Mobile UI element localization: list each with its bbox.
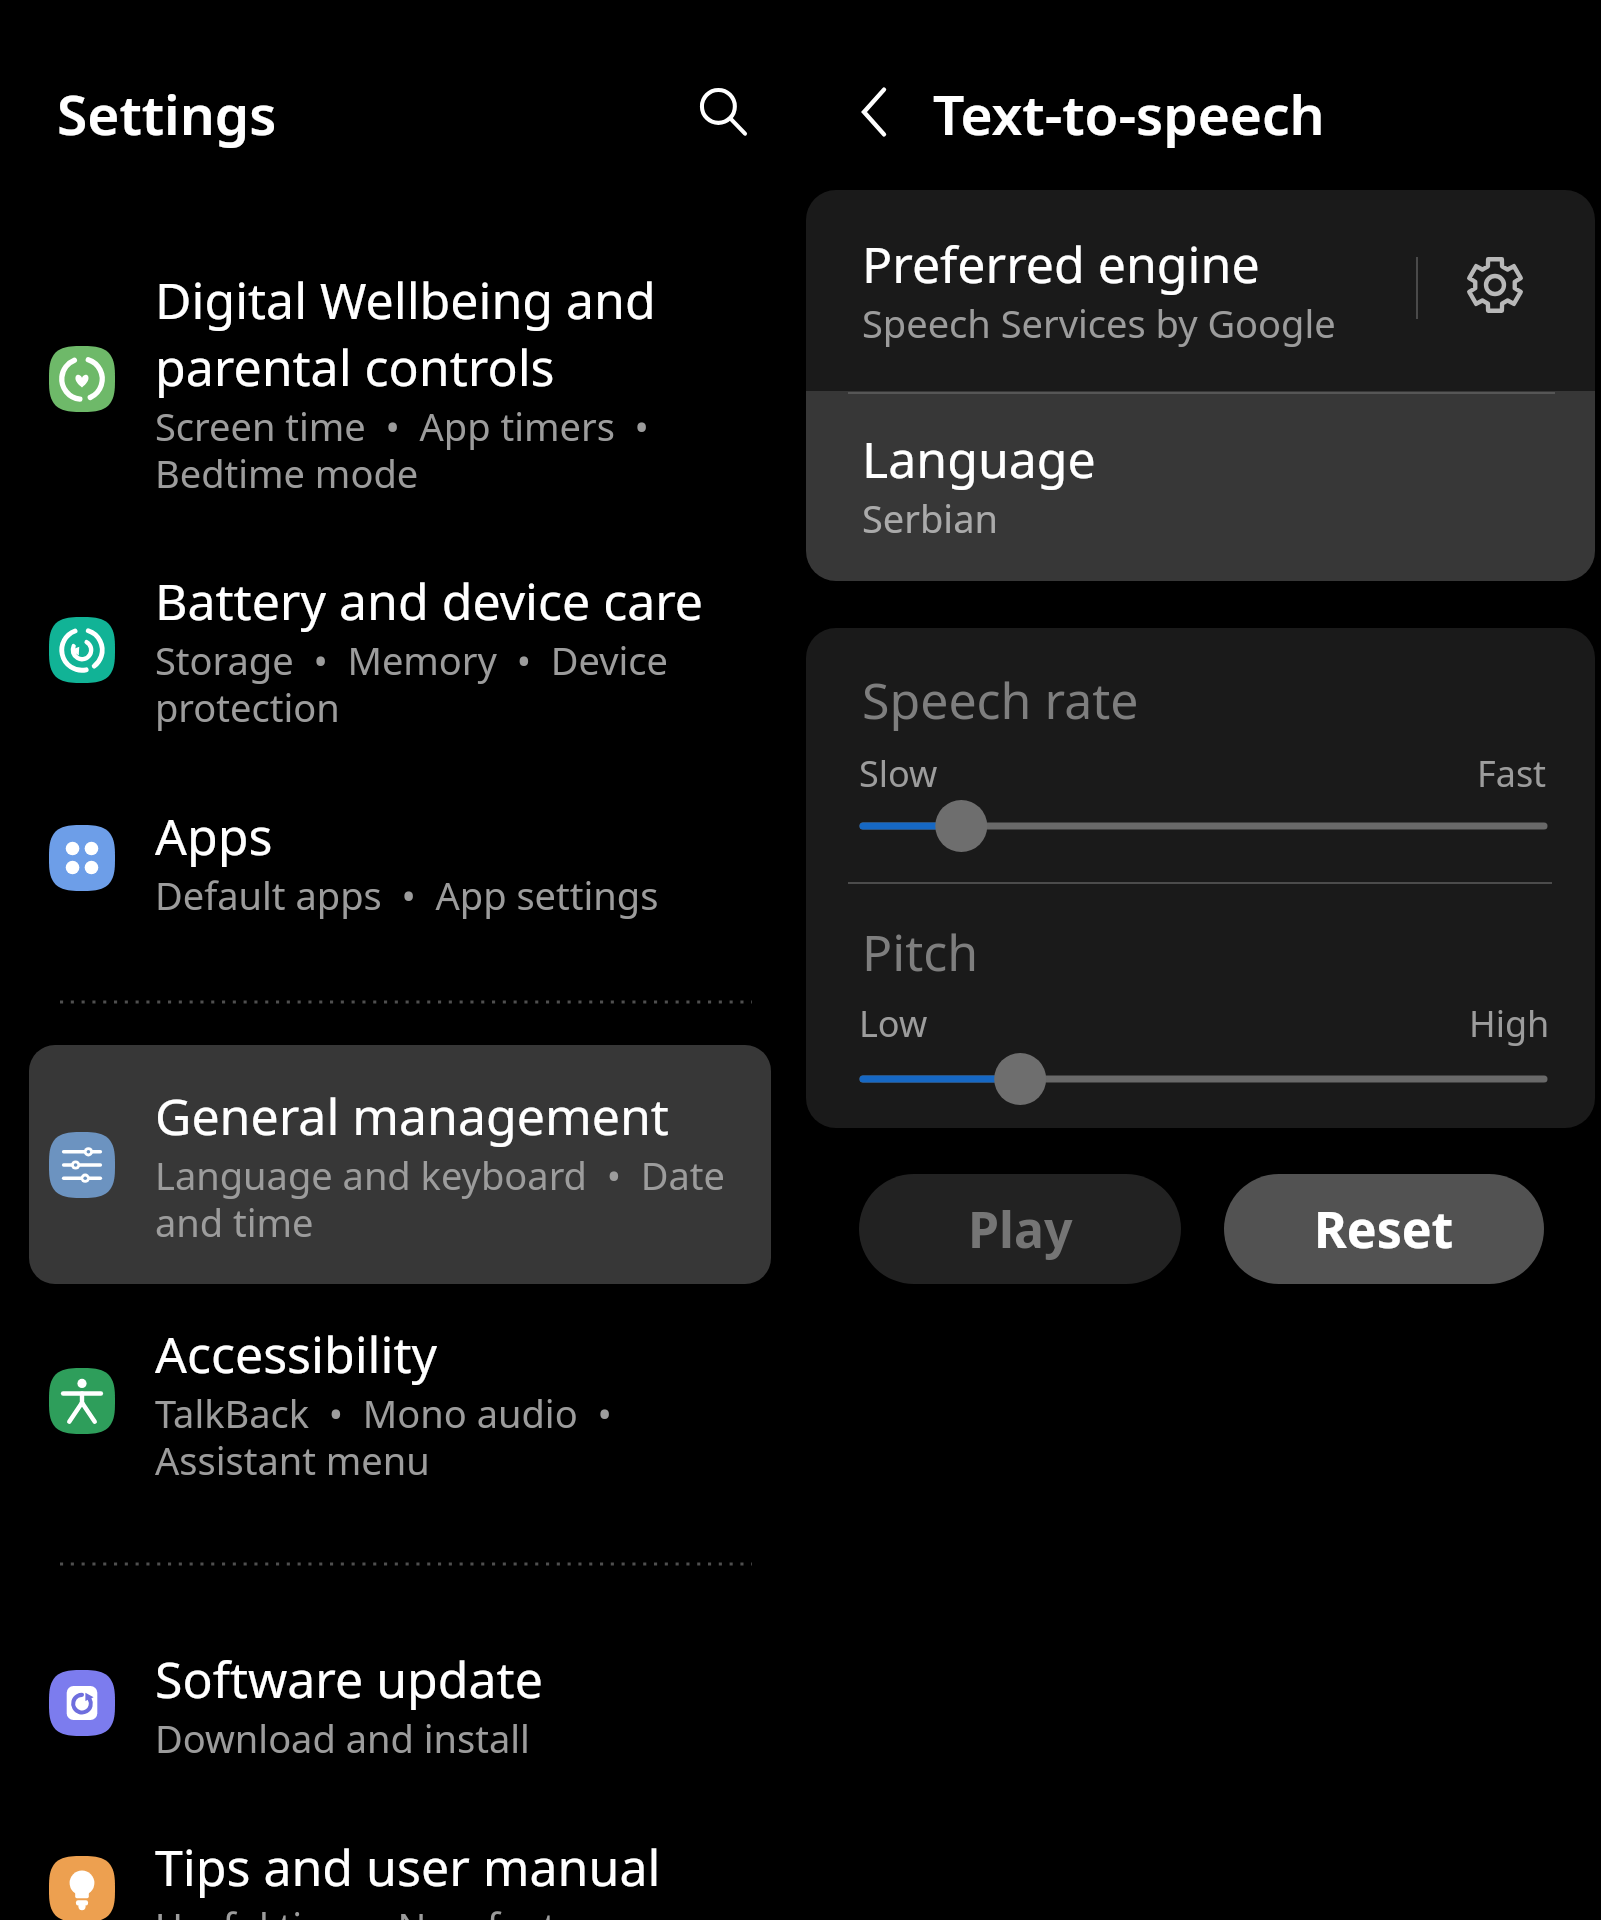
staticText: Download and install: [155, 1716, 530, 1763]
button[interactable]: Accessibility: [29, 1292, 771, 1522]
staticText: Speech Services by Google: [862, 301, 1336, 348]
staticText: TalkBack • Mono audio • Assistant menu: [155, 1391, 612, 1485]
staticText: Useful tips • New features: [155, 1904, 635, 1920]
staticText: General management: [155, 1082, 669, 1149]
button[interactable]: Search: [684, 72, 764, 152]
button[interactable]: Tips and user manual: [29, 1810, 771, 1920]
staticText: Play: [968, 1195, 1073, 1263]
staticText: Software update: [155, 1645, 543, 1712]
staticText: Settings: [57, 76, 277, 151]
button[interactable]: Engine settings: [1456, 246, 1534, 324]
staticText: Language: [862, 425, 1096, 492]
button[interactable]: Language: [806, 391, 1595, 581]
staticText: Accessibility: [155, 1320, 437, 1387]
staticText: Speech rate: [862, 666, 1139, 734]
button[interactable]: Reset: [1224, 1174, 1544, 1284]
staticText: Tips and user manual: [155, 1833, 661, 1900]
button[interactable]: Back: [836, 72, 916, 152]
staticText: Battery and device care: [155, 567, 704, 634]
staticText: Serbian: [862, 496, 998, 543]
staticText: High: [1469, 999, 1550, 1048]
staticText: Slow: [859, 749, 938, 798]
button[interactable]: Battery and device care: [29, 537, 771, 767]
button[interactable]: Software update: [29, 1620, 771, 1790]
staticText: Pitch: [862, 918, 979, 986]
button[interactable]: Preferred engine: [806, 190, 1595, 391]
staticText: Low: [859, 999, 928, 1048]
staticText: Text-to-speech: [933, 76, 1325, 151]
staticText: Digital Wellbeing and parental controls: [155, 266, 656, 400]
staticText: Screen time • App timers • Bedtime mode: [155, 404, 649, 498]
staticText: Preferred engine: [862, 230, 1260, 297]
button[interactable]: Play: [859, 1174, 1181, 1284]
staticText: Fast: [1477, 749, 1547, 798]
staticText: Default apps • App settings: [155, 873, 659, 920]
staticText: Reset: [1314, 1195, 1454, 1263]
button[interactable]: Digital Wellbeing and parental controls: [29, 236, 771, 526]
button[interactable]: Apps: [29, 783, 771, 948]
staticText: Apps: [155, 802, 273, 869]
staticText: Storage • Memory • Device protection: [155, 638, 668, 732]
staticText: Language and keyboard • Date and time: [155, 1153, 725, 1247]
button[interactable]: General management: [29, 1045, 771, 1284]
